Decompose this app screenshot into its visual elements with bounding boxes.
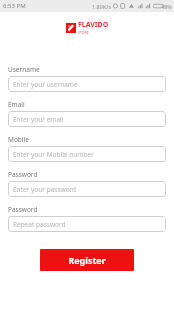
staticText: Enter your password: [13, 185, 77, 194]
staticText: STORE: [78, 30, 89, 35]
button[interactable]: Enter your password: [8, 181, 166, 197]
staticText: 6:53 PM: [3, 2, 26, 10]
staticText: Username: [8, 65, 40, 74]
button[interactable]: Enter your username: [8, 76, 166, 92]
button[interactable]: Enter your Mobile number: [8, 146, 166, 162]
button[interactable]: Register: [40, 249, 134, 271]
staticText: Mobile: [8, 135, 29, 144]
staticText: Enter your Mobile number: [13, 150, 94, 159]
staticText: Password: [8, 170, 38, 179]
staticText: Register: [68, 254, 106, 266]
staticText: Email: [8, 100, 25, 109]
staticText: Enter your username: [13, 80, 78, 89]
staticText: Enter your email: [13, 115, 64, 124]
staticText: 1.89K/s: [92, 3, 111, 10]
button[interactable]: Repeat password: [8, 216, 166, 232]
staticText: 48%: [161, 3, 172, 10]
staticText: FLAVIDO: [78, 20, 109, 30]
staticText: Password: [8, 205, 38, 214]
staticText: Repeat password: [13, 220, 66, 229]
button[interactable]: Enter your email: [8, 111, 166, 127]
